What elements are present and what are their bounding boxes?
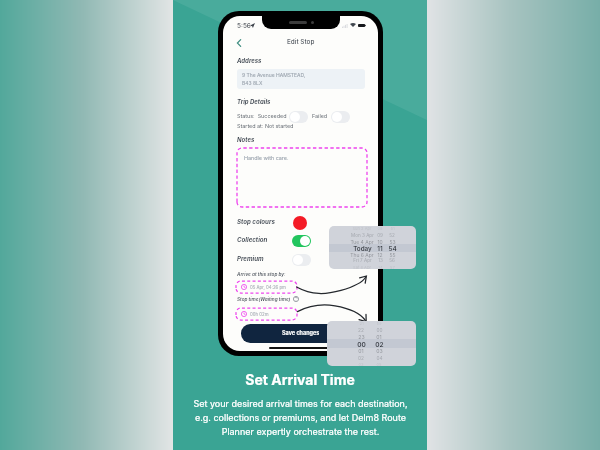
staticText: 05 Apr, 04:26 pm	[250, 285, 286, 290]
staticText: Fri 7 Apr	[353, 258, 372, 264]
staticText: 22	[358, 327, 364, 333]
staticText: 51	[390, 226, 395, 231]
staticText: 05	[376, 362, 382, 366]
staticText: 54	[388, 245, 397, 253]
staticText: Handle with care.	[244, 155, 289, 162]
staticText: 02	[375, 341, 384, 349]
button[interactable]: Toggle off	[331, 111, 350, 123]
staticText: 03	[376, 348, 383, 354]
button[interactable]: Stop colour	[293, 216, 307, 230]
button[interactable]: 21	[327, 321, 416, 366]
staticText: 14	[378, 265, 383, 269]
staticText: Save changes	[282, 330, 320, 337]
staticText: Edit Stop	[287, 38, 315, 46]
staticText: 21	[359, 321, 364, 326]
staticText: 13	[378, 258, 383, 264]
staticText: 23	[358, 334, 365, 340]
staticText: Trip Details	[237, 98, 271, 105]
staticText: Status: Succeeded	[237, 113, 287, 120]
button[interactable]: Back	[231, 35, 247, 51]
staticText: Sun 2 Apr	[352, 226, 372, 231]
staticText: Notes	[237, 136, 255, 143]
staticText: 08	[377, 226, 383, 231]
staticText: 59	[376, 321, 382, 326]
staticText: 5:56	[237, 22, 251, 30]
button[interactable]: 00h 02m	[236, 308, 297, 320]
button[interactable]: 05 Apr, 04:26 pm	[236, 281, 297, 293]
staticText: 00	[357, 341, 366, 349]
button[interactable]: Save changes	[241, 324, 361, 343]
button[interactable]: Toggle off	[292, 254, 311, 266]
staticText: 10	[377, 239, 383, 245]
staticText: Address	[237, 57, 262, 64]
staticText: 56	[389, 258, 395, 264]
staticText: 02	[358, 355, 364, 361]
staticText: Collection	[237, 236, 268, 243]
staticText: 52	[389, 233, 395, 239]
staticText: 01	[358, 348, 364, 354]
staticText: 03	[358, 362, 364, 366]
staticText: 09	[377, 233, 383, 239]
staticText: Stop colours	[237, 218, 275, 225]
staticText: Tue 4 Apr	[350, 239, 374, 245]
staticText: Failed	[312, 113, 328, 120]
staticText: Started at: Not started	[237, 123, 294, 130]
button[interactable]: Sun 2 Apr	[329, 226, 416, 269]
staticText: 01	[376, 334, 382, 340]
button[interactable]: Toggle off	[289, 111, 308, 123]
staticText: 11	[377, 245, 383, 253]
staticText: Arrive at this stop by:	[237, 271, 286, 277]
staticText: Set Arrival Time	[245, 371, 355, 388]
staticText: Stop time(Waiting time)	[237, 296, 291, 302]
staticText: Sat 8 Apr	[353, 265, 371, 269]
staticText: 55	[389, 252, 396, 258]
staticText: 00	[376, 327, 383, 333]
staticText: B43 8LX	[242, 80, 263, 86]
staticText: Set your desired arrival times for each …	[193, 398, 408, 437]
staticText: Mon 3 Apr	[351, 233, 374, 239]
staticText: 12	[377, 252, 383, 258]
staticText: Thu 6 Apr	[350, 252, 374, 258]
staticText: 57	[390, 265, 395, 269]
staticText: Premium	[237, 255, 264, 262]
staticText: 00h 02m	[250, 312, 269, 317]
staticText: 9 The Avenue HAMSTEAD,	[242, 72, 306, 78]
button[interactable]: Handle with care.	[237, 148, 367, 207]
staticText: 53	[389, 239, 396, 245]
button[interactable]: Toggle on	[292, 235, 311, 247]
staticText: Today	[353, 245, 372, 253]
staticText: 04	[376, 355, 383, 361]
